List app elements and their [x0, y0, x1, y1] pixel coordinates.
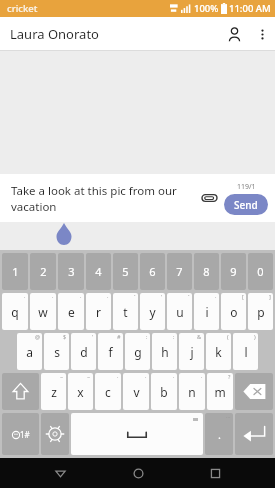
staticText: · [107, 293, 109, 300]
button[interactable]: · [30, 293, 56, 330]
button[interactable]: ` [167, 293, 192, 330]
button[interactable]: Send [224, 194, 268, 215]
button[interactable]: More options [249, 21, 275, 47]
button[interactable]: @ [17, 333, 42, 370]
button[interactable]: 7 [167, 253, 192, 290]
button[interactable]: · [2, 293, 28, 330]
staticText: 0 [257, 264, 264, 279]
staticText: [ [242, 293, 244, 300]
staticText: q [11, 304, 19, 320]
staticText: ` [134, 293, 136, 300]
staticText: ' [161, 293, 163, 300]
staticText: : [146, 333, 148, 340]
staticText: ] [269, 293, 271, 300]
staticText: e [68, 304, 75, 320]
button[interactable]: ~ [41, 373, 66, 410]
staticText: Send [234, 198, 258, 212]
staticText: : [173, 333, 175, 340]
button[interactable]: ` [113, 293, 138, 330]
button[interactable]: : [152, 333, 177, 370]
button[interactable]: · [179, 373, 205, 410]
button[interactable]: 8 [194, 253, 219, 290]
button[interactable]: 4 [86, 253, 111, 290]
button[interactable]: · [151, 373, 177, 410]
button[interactable]: Keyboard settings [41, 413, 69, 455]
staticText: ~ [87, 373, 91, 380]
staticText: cricket [7, 2, 38, 15]
button[interactable]: : [125, 333, 150, 370]
button[interactable]: ) [233, 333, 258, 370]
button[interactable]: 2 [30, 253, 56, 290]
button[interactable]: $ [44, 333, 69, 370]
button[interactable]: ' [140, 293, 165, 330]
staticText: s [54, 344, 60, 360]
button[interactable]: Recents [198, 458, 232, 488]
staticText: y [149, 304, 156, 320]
staticText: 7 [176, 264, 183, 279]
staticText: 9 [230, 264, 237, 279]
button[interactable]: Enter [235, 413, 273, 455]
staticText: i [205, 304, 209, 320]
staticText: 100% [194, 2, 219, 15]
staticText: Laura Onorato [10, 25, 99, 43]
button[interactable]: ' [71, 333, 96, 370]
button[interactable]: 9 [221, 253, 246, 290]
staticText: 1# [20, 429, 30, 440]
button[interactable]: Home [121, 458, 155, 488]
staticText: Take a look at this pic from our vacatio… [11, 183, 189, 214]
staticText: $ [63, 333, 67, 340]
staticText: · [215, 293, 217, 300]
button[interactable]: Attach [195, 184, 223, 212]
staticText: z [51, 384, 57, 400]
staticText: 5 [122, 264, 129, 279]
staticText: · [201, 373, 203, 380]
button[interactable]: · [123, 373, 149, 410]
staticText: d [80, 344, 88, 360]
button[interactable]: 5 [113, 253, 138, 290]
staticText: · [52, 293, 54, 300]
button[interactable]: Backspace [235, 373, 273, 410]
staticText: n [188, 384, 196, 400]
staticText: p [257, 304, 265, 320]
button[interactable]: 6 [140, 253, 165, 290]
staticText: c [105, 384, 111, 400]
button[interactable]: Symbols [2, 413, 39, 455]
button[interactable]: ? [207, 373, 233, 410]
button[interactable]: Shift [2, 373, 39, 410]
button[interactable]: ] [248, 293, 273, 330]
staticText: j [190, 344, 194, 360]
staticText: g [134, 344, 142, 360]
staticText: 1 [12, 264, 19, 279]
staticText: ~ [60, 373, 64, 380]
button[interactable]: · [95, 373, 121, 410]
button[interactable]: & [179, 333, 204, 370]
button[interactable]: Back [43, 458, 77, 488]
button[interactable]: · [58, 293, 84, 330]
button[interactable]: 0 [248, 253, 273, 290]
staticText: ` [188, 293, 190, 300]
button[interactable]: ··· [205, 413, 233, 455]
staticText: · [24, 293, 26, 300]
button[interactable]: Space [71, 413, 203, 455]
button[interactable]: · [86, 293, 111, 330]
staticText: 4 [95, 264, 102, 279]
staticText: 119/1 [237, 182, 256, 192]
staticText: a [26, 344, 33, 360]
button[interactable]: [ [221, 293, 246, 330]
button[interactable]: 1 [2, 253, 28, 290]
staticText: h [161, 344, 169, 360]
button[interactable]: Contact details [219, 19, 249, 49]
button[interactable]: ~ [68, 373, 93, 410]
button[interactable]: · [194, 293, 219, 330]
button[interactable]: 3 [58, 253, 84, 290]
button[interactable]: # [98, 333, 123, 370]
button[interactable]: ( [206, 333, 231, 370]
staticText: x [77, 384, 84, 400]
staticText: · [173, 373, 175, 380]
staticText: l [244, 344, 248, 360]
staticText: b [160, 384, 168, 400]
staticText: 11:00 AM [229, 2, 271, 15]
staticText: ? [228, 373, 231, 380]
staticText: r [96, 304, 101, 320]
